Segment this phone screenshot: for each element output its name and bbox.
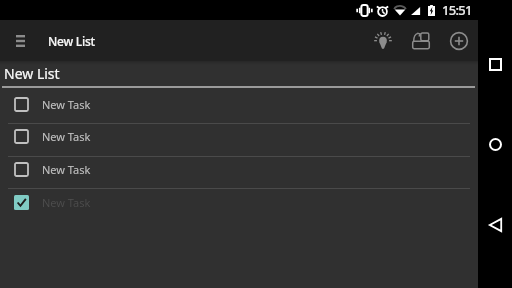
- staticText: New Task: [42, 97, 91, 112]
- button[interactable]: Hint: [364, 20, 402, 61]
- staticText: New Task: [42, 162, 91, 177]
- staticText: New Task: [42, 195, 91, 210]
- button[interactable]: Recent apps: [478, 47, 512, 81]
- staticText: 15:51: [442, 1, 472, 19]
- button[interactable]: Back: [478, 208, 512, 242]
- button[interactable]: Add task: [440, 20, 478, 61]
- button[interactable]: Home: [478, 127, 512, 161]
- button[interactable]: Lock list: [402, 20, 440, 61]
- staticText: New List: [48, 33, 95, 49]
- staticText: New Task: [42, 129, 91, 144]
- button[interactable]: New Task: [0, 186, 478, 218]
- button[interactable]: New Task: [0, 153, 478, 185]
- staticText: New List: [4, 64, 60, 83]
- button[interactable]: New Task: [0, 88, 478, 120]
- button[interactable]: New Task: [0, 120, 478, 152]
- button[interactable]: Menu: [0, 20, 41, 61]
